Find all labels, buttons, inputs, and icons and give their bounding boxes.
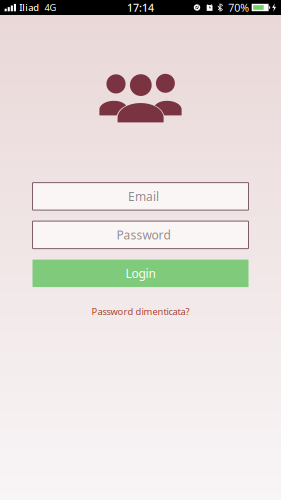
button[interactable]: Password dimenticata? xyxy=(85,303,195,319)
button[interactable]: Password xyxy=(32,221,248,249)
button[interactable]: Email xyxy=(32,183,248,210)
button[interactable]: Login xyxy=(32,260,248,287)
staticText: Login xyxy=(125,265,155,281)
staticText: 70% xyxy=(228,0,249,15)
staticText: Password xyxy=(116,227,170,243)
staticText: Email xyxy=(128,188,159,204)
staticText: Iliad xyxy=(19,1,39,14)
staticText: 4G xyxy=(44,1,56,14)
staticText: 17:14 xyxy=(127,0,154,15)
staticText: Password dimenticata? xyxy=(91,305,189,317)
